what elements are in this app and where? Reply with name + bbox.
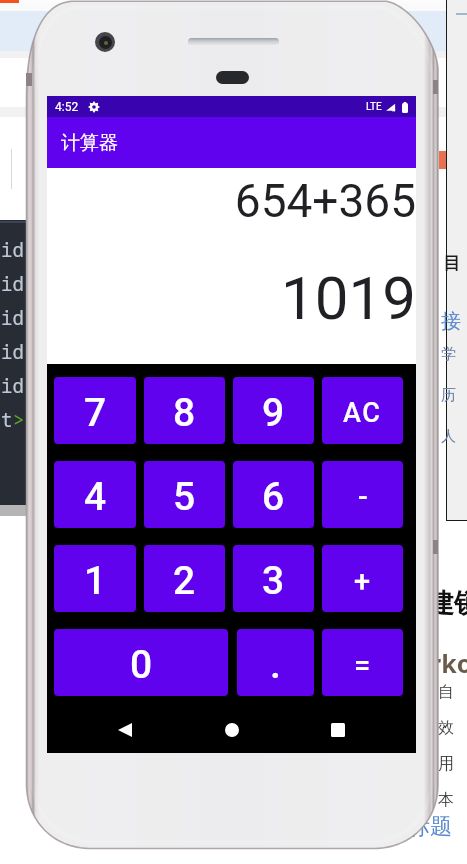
staticText: AC [343,397,382,429]
staticText: 4:52 [55,100,79,114]
staticText: 计算器 [61,131,118,155]
button[interactable]: 7 [54,377,136,444]
button[interactable]: 1 [54,545,136,612]
button[interactable]: 0 [54,629,228,696]
staticText: 6 [262,474,285,520]
button[interactable]: AC [322,377,403,444]
staticText: 5 [173,474,196,520]
staticText: 7 [84,390,107,436]
staticText: . [270,642,281,688]
staticText: 2 [173,558,196,604]
button[interactable]: 3 [233,545,314,612]
staticText: 9 [262,390,285,436]
staticText: > [13,407,25,433]
staticText: id [1,271,24,297]
staticText: 4 [84,474,107,520]
staticText: 3 [262,558,285,604]
staticText: + [354,564,371,598]
staticText: t [1,407,13,433]
staticText: 654+365 [234,174,416,228]
staticText: 用 [438,754,454,774]
button[interactable]: + [322,545,403,612]
button[interactable]: 5 [144,461,225,528]
staticText: id [1,373,24,399]
staticText: 标题 [408,813,452,841]
staticText: id [1,237,24,263]
staticText: 人 [441,427,456,446]
button[interactable]: 8 [144,377,225,444]
staticText: 历 [441,386,456,405]
staticText: 建锁 [428,587,467,620]
button[interactable]: 6 [233,461,314,528]
button[interactable]: 2 [144,545,225,612]
staticText: id [1,305,24,331]
staticText: 效 [438,718,454,738]
staticText: 1019 [281,263,416,333]
button[interactable]: Back [112,717,138,743]
staticText: 8 [173,390,196,436]
button[interactable]: 计算器 [47,117,416,168]
staticText: 接 [441,309,461,334]
staticText: 1 [84,558,107,604]
staticText: 学 [441,345,456,364]
staticText: 0 [130,642,153,688]
button[interactable]: = [322,629,403,696]
staticText: 自 [438,682,454,702]
staticText: rko [430,646,467,680]
staticText: 目 [443,253,460,274]
staticText: 本 [438,790,454,810]
button[interactable]: 4 [54,461,136,528]
staticText: = [354,648,371,682]
button[interactable]: Home [219,717,245,743]
button[interactable]: - [322,461,403,528]
button[interactable]: Recents [325,717,351,743]
staticText: - [358,480,368,514]
staticText: id [1,339,24,365]
staticText: LTE [366,101,382,113]
button[interactable]: . [237,629,314,696]
button[interactable]: 9 [233,377,314,444]
